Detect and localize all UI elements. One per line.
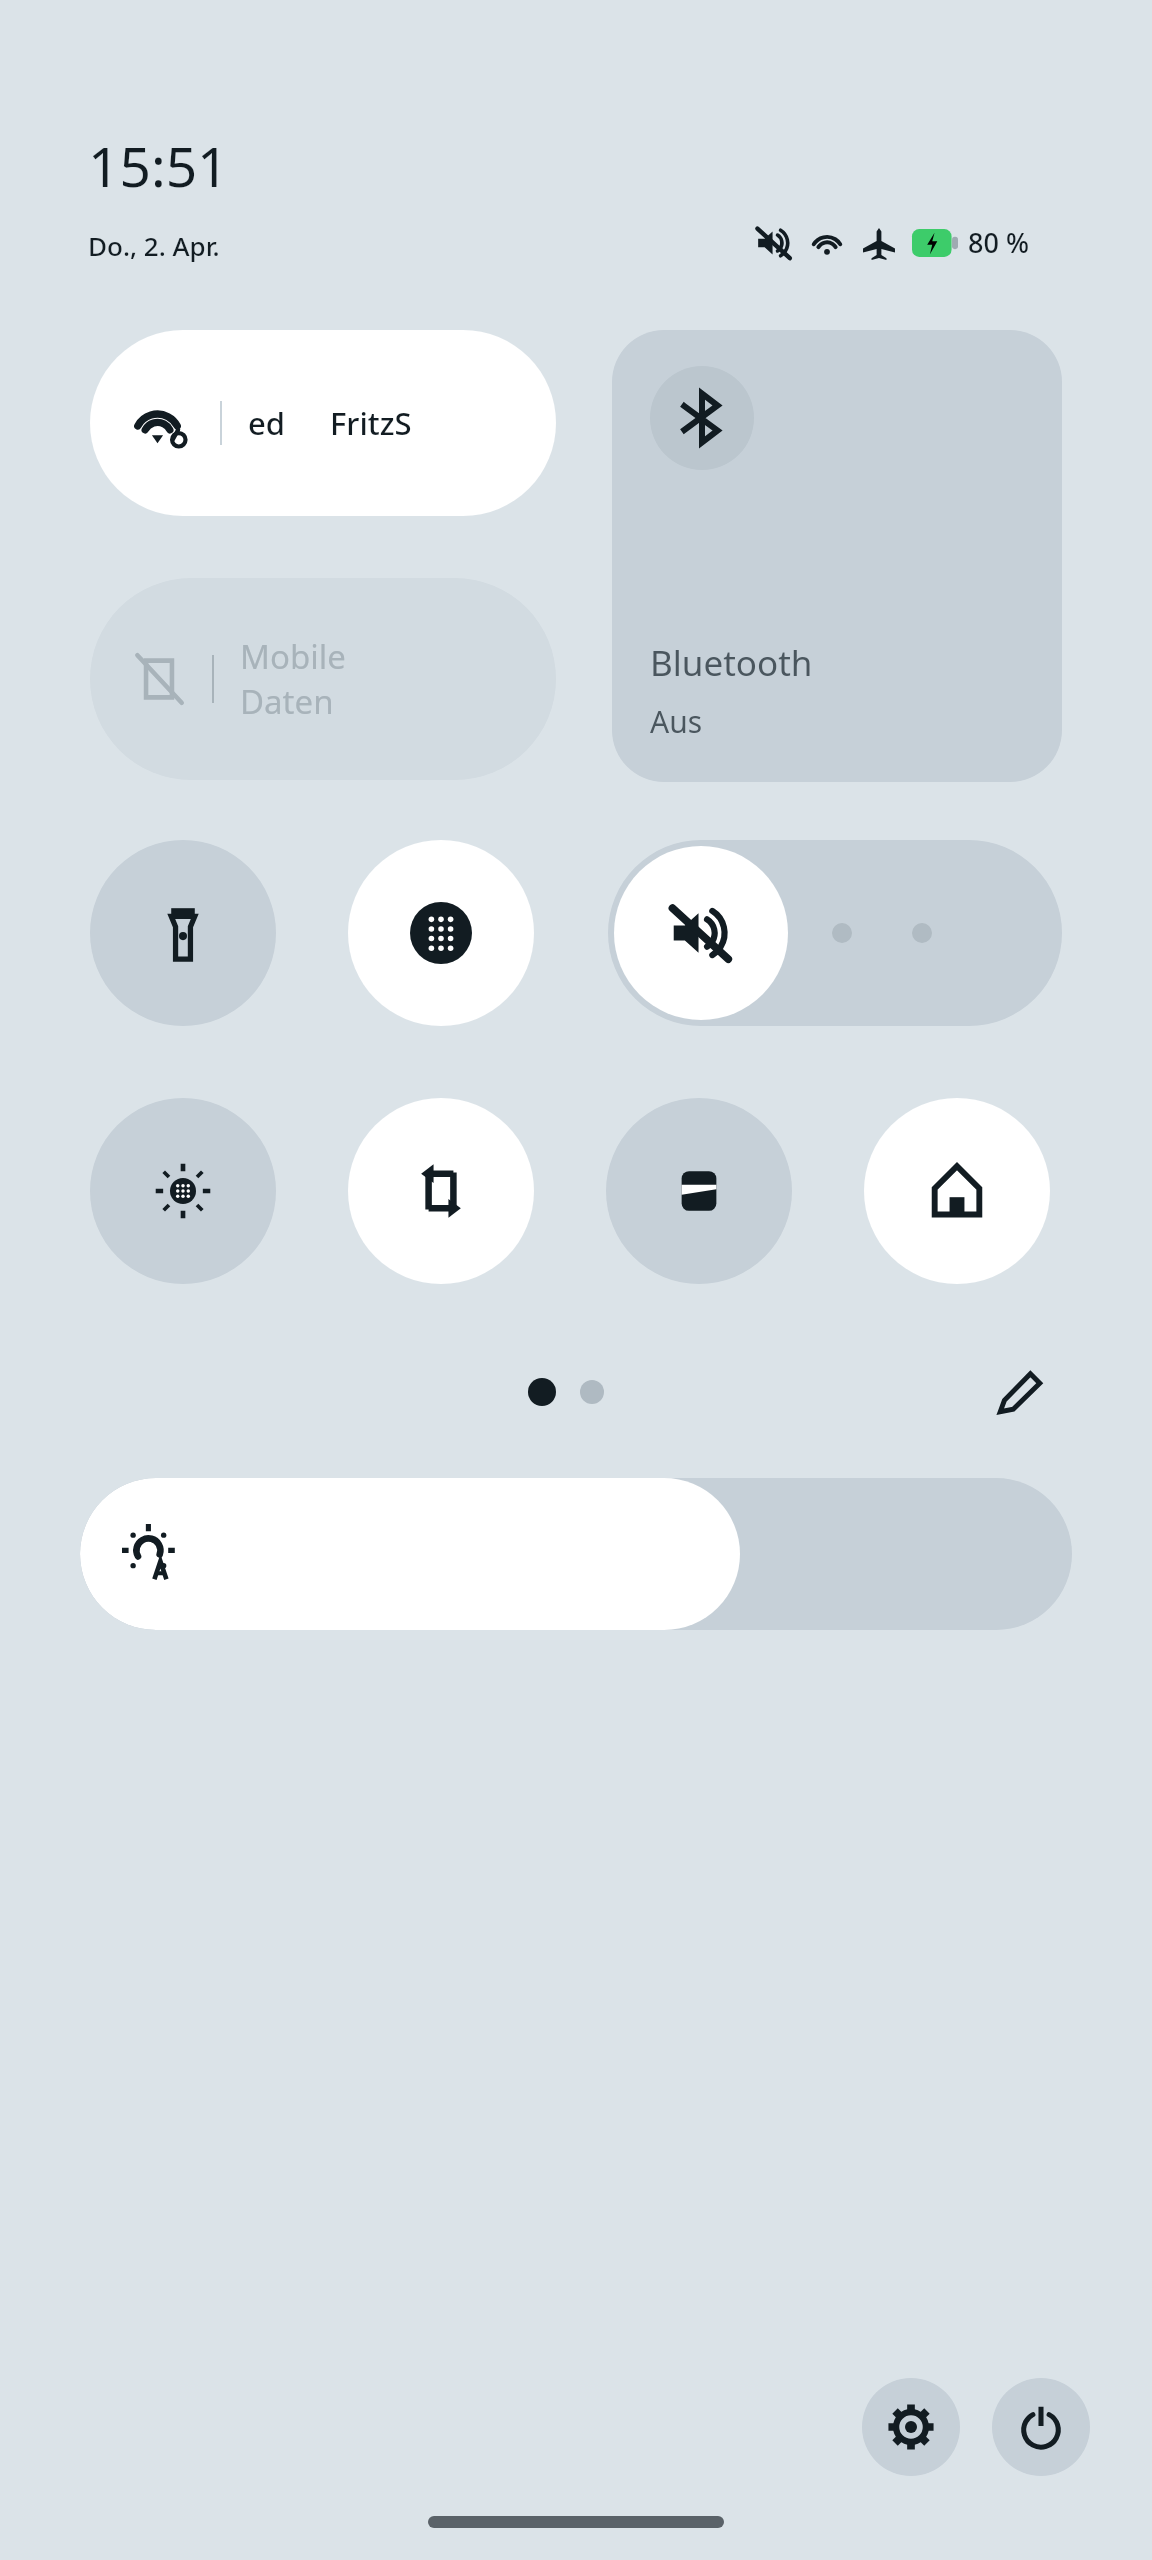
staticText: Daten [240,679,334,724]
button[interactable]: Drehung [348,1098,534,1284]
button[interactable]: Bearbeiten [968,1340,1072,1444]
button[interactable]: Bluetooth [612,330,1062,782]
button[interactable]: Taschenlampe [90,840,276,1026]
button[interactable]: ed [90,330,556,516]
staticText: 80 % [968,224,1029,261]
staticText: Bluetooth [650,639,813,687]
staticText: Do., 2. Apr. [88,228,220,263]
button[interactable]: Screenshot [348,840,534,1026]
staticText: Mobile [240,634,346,679]
button[interactable]: Seite 2 [580,1380,604,1404]
button[interactable]: Wallet [606,1098,792,1284]
staticText: ed [248,402,286,444]
button[interactable]: Einstellungen [862,2378,960,2476]
button[interactable]: Seite 1 [528,1378,556,1406]
button[interactable]: Zuhause [864,1098,1050,1284]
button[interactable]: Helligkeit [80,1478,1072,1630]
button[interactable]: Helligkeit [90,1098,276,1284]
staticText: FritzS [330,402,412,444]
button[interactable]: Mobile [90,578,556,780]
staticText: 15:51 [88,128,229,203]
button[interactable]: Ton aus [608,840,1062,1026]
staticText: Aus [650,701,703,742]
button[interactable]: Ein/Aus [992,2378,1090,2476]
